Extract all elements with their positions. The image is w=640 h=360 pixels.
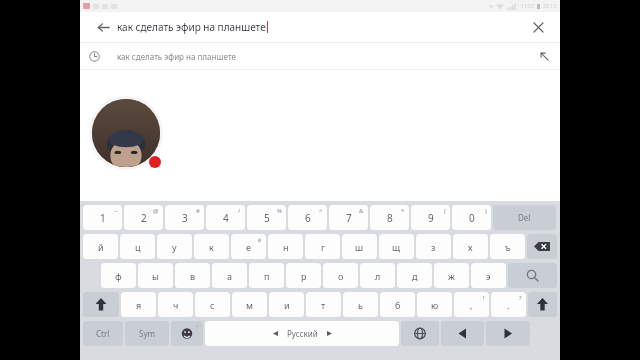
button[interactable]: л [360,263,395,288]
staticText: е [246,241,251,253]
button[interactable]: ь [343,292,378,317]
button[interactable]: Emoji [171,321,203,346]
button[interactable]: о [323,263,358,288]
button[interactable]: ф [101,263,136,288]
button[interactable]: з [416,234,451,259]
button[interactable]: 5 [247,205,286,230]
staticText: , [470,299,473,311]
button[interactable]: с [195,292,230,317]
staticText: # [196,207,200,215]
button[interactable]: Shift right [528,292,557,317]
button[interactable]: ы [138,263,173,288]
button[interactable]: Ctrl [83,321,123,346]
staticText: у [172,241,177,253]
button[interactable]: 7 [329,205,368,230]
button[interactable]: , [454,292,489,317]
staticText: 7 [346,211,352,225]
staticText: ^ [319,207,323,215]
staticText: ж [448,270,455,282]
staticText: п [264,270,270,282]
button[interactable]: н [268,234,303,259]
button[interactable]: и [269,292,304,317]
staticText: ю [431,299,439,311]
staticText: в [190,270,196,282]
button[interactable]: м [232,292,267,317]
staticText: с [210,299,215,311]
staticText: г [321,241,325,253]
staticText: 6 [305,211,311,225]
button[interactable]: Recording [149,156,161,168]
staticText: 0 [469,211,475,225]
staticText: ш [355,241,364,253]
button[interactable]: 4 [206,205,245,230]
staticText: р [301,270,307,282]
button[interactable]: ш [342,234,377,259]
staticText: ы [152,270,159,282]
staticText: 4 [223,211,229,225]
button[interactable]: Shift [83,292,119,317]
staticText: как сделать эфир на планшете [117,51,236,62]
staticText: . [507,299,510,311]
button[interactable] [92,99,160,167]
staticText: / [238,207,241,215]
button[interactable]: т [306,292,341,317]
button[interactable]: щ [379,234,414,259]
staticText: ) [485,207,487,215]
button[interactable]: . [491,292,526,317]
staticText: ( [444,207,446,215]
button[interactable]: е [231,234,266,259]
button[interactable]: й [83,234,118,259]
button[interactable]: ж [434,263,469,288]
button[interactable]: 6 [288,205,327,230]
button[interactable]: ю [417,292,452,317]
button[interactable]: 2 [124,205,163,230]
staticText: а [227,270,233,282]
button[interactable]: д [397,263,432,288]
button[interactable]: Space [205,321,399,346]
button[interactable]: х [453,234,488,259]
button[interactable]: 0 [452,205,491,230]
button[interactable]: в [175,263,210,288]
button[interactable]: я [121,292,156,317]
staticText: к [209,241,214,253]
button[interactable]: Change language [401,321,439,346]
staticText: щ [392,241,401,253]
staticText: з [431,241,436,253]
button[interactable]: 9 [411,205,450,230]
button[interactable]: б [380,292,415,317]
staticText: д [412,270,418,282]
button[interactable]: Left [441,321,484,346]
button[interactable]: г [305,234,340,259]
button[interactable]: как сделать эфир на планшете [80,43,560,69]
button[interactable]: 8 [370,205,409,230]
button[interactable]: к [194,234,229,259]
button[interactable]: э [471,263,506,288]
button[interactable]: у [157,234,192,259]
button[interactable]: Del [493,205,556,230]
button[interactable]: Sym [125,321,169,346]
button[interactable]: ъ [490,234,525,259]
button[interactable]: Right [486,321,530,346]
staticText: э [486,270,491,282]
staticText: о [338,270,344,282]
staticText: ъ [505,241,511,253]
button[interactable]: ч [158,292,193,317]
staticText: м [246,299,253,311]
staticText: Ctrl [96,328,110,339]
button[interactable]: р [286,263,321,288]
button[interactable]: а [212,263,247,288]
button[interactable]: ц [120,234,155,259]
staticText: как сделать эфир на планшете [117,20,266,34]
button[interactable]: Clear [526,15,550,39]
button[interactable]: Search [508,263,557,288]
button[interactable]: Backspace [527,234,557,259]
button[interactable]: п [249,263,284,288]
staticText: ь [358,299,363,311]
staticText: % [277,207,282,215]
button[interactable]: Back [90,14,116,40]
button[interactable]: 3 [165,205,204,230]
button[interactable]: 1 [83,205,122,230]
staticText: ч [173,299,179,311]
staticText: ф [115,270,122,282]
staticText: ! [483,294,485,302]
